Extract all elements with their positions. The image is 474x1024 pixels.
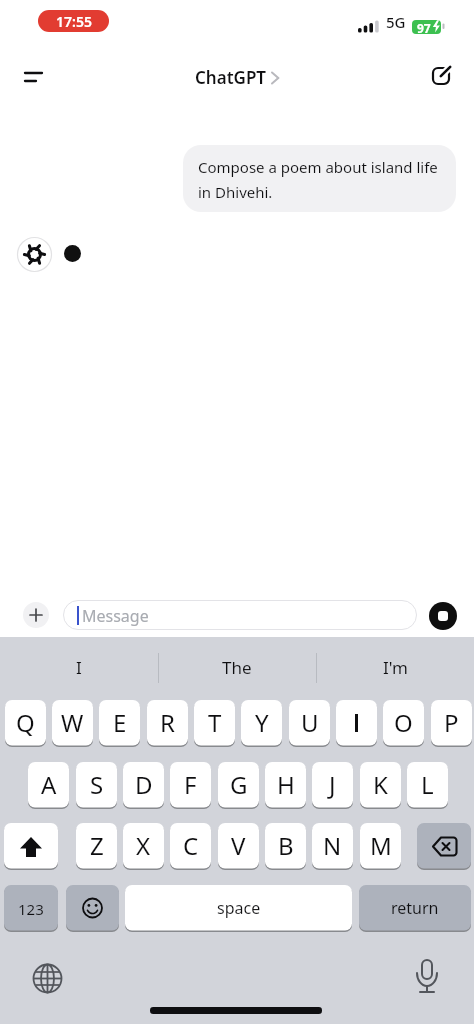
button[interactable] bbox=[4, 823, 58, 870]
button[interactable] bbox=[417, 823, 471, 870]
button[interactable] bbox=[31, 962, 64, 995]
button[interactable] bbox=[17, 64, 51, 90]
button[interactable]: H bbox=[265, 762, 306, 809]
staticText: U bbox=[301, 706, 319, 739]
staticText: Y bbox=[255, 706, 269, 739]
button[interactable]: Message bbox=[63, 600, 417, 630]
button[interactable] bbox=[23, 602, 49, 628]
button[interactable]: N bbox=[312, 823, 353, 870]
button[interactable] bbox=[413, 957, 441, 999]
staticText: I'm bbox=[383, 656, 408, 679]
button[interactable]: Q bbox=[5, 700, 46, 747]
staticText: C bbox=[183, 829, 199, 862]
button[interactable]: K bbox=[360, 762, 401, 809]
button[interactable]: Y bbox=[241, 700, 282, 747]
staticText: W bbox=[61, 706, 84, 739]
staticText: Q bbox=[16, 706, 35, 739]
button[interactable]: The bbox=[158, 648, 316, 686]
staticText: Message bbox=[82, 605, 149, 627]
staticText: R bbox=[160, 706, 175, 739]
staticText: T bbox=[208, 706, 222, 739]
staticText: G bbox=[230, 768, 248, 801]
staticText: The bbox=[222, 656, 252, 679]
staticText: in Dhivehi. bbox=[198, 182, 273, 202]
button[interactable]: G bbox=[218, 762, 259, 809]
staticText: M bbox=[370, 829, 392, 862]
button[interactable]: I'm bbox=[316, 648, 474, 686]
staticText: 97 bbox=[417, 20, 431, 34]
staticText: E bbox=[113, 706, 127, 739]
button[interactable]: M bbox=[360, 823, 401, 870]
button[interactable] bbox=[336, 700, 377, 747]
button[interactable] bbox=[66, 885, 119, 932]
button[interactable]: S bbox=[76, 762, 117, 809]
staticText: return bbox=[391, 897, 439, 919]
staticText: L bbox=[421, 768, 434, 801]
button[interactable]: Z bbox=[76, 823, 117, 870]
button[interactable]: P bbox=[431, 700, 472, 747]
staticText: K bbox=[373, 768, 388, 801]
staticText: F bbox=[184, 768, 197, 801]
button[interactable]: U bbox=[289, 700, 330, 747]
button[interactable]: J bbox=[312, 762, 353, 809]
staticText: Z bbox=[90, 829, 104, 862]
staticText: S bbox=[90, 768, 104, 801]
button[interactable]: L bbox=[407, 762, 448, 809]
staticText: 5G bbox=[386, 12, 406, 32]
button[interactable] bbox=[428, 61, 456, 89]
staticText: V bbox=[231, 829, 246, 862]
staticText: I bbox=[76, 656, 82, 679]
button[interactable]: T bbox=[194, 700, 235, 747]
button[interactable]: return bbox=[359, 885, 471, 932]
button[interactable]: space bbox=[125, 885, 352, 932]
staticText: D bbox=[135, 768, 153, 801]
staticText: B bbox=[278, 829, 294, 862]
button[interactable]: ChatGPT bbox=[195, 66, 267, 89]
button[interactable]: V bbox=[218, 823, 259, 870]
button[interactable]: R bbox=[147, 700, 188, 747]
button[interactable]: F bbox=[170, 762, 211, 809]
staticText: X bbox=[136, 829, 151, 862]
button[interactable]: D bbox=[123, 762, 164, 809]
button[interactable]: A bbox=[28, 762, 69, 809]
staticText: N bbox=[323, 829, 342, 862]
staticText: P bbox=[444, 706, 459, 739]
button[interactable]: 123 bbox=[4, 885, 58, 932]
staticText: space bbox=[217, 897, 261, 919]
button[interactable]: X bbox=[123, 823, 164, 870]
staticText: 123 bbox=[18, 899, 44, 919]
button[interactable]: W bbox=[52, 700, 93, 747]
staticText: Compose a poem about island life bbox=[198, 157, 438, 177]
staticText: A bbox=[41, 768, 57, 801]
button[interactable]: O bbox=[383, 700, 424, 747]
staticText: H bbox=[277, 768, 295, 801]
button[interactable] bbox=[429, 602, 457, 630]
staticText: ChatGPT bbox=[195, 66, 267, 89]
button[interactable]: I bbox=[0, 648, 158, 686]
staticText: O bbox=[394, 706, 413, 739]
staticText: J bbox=[329, 768, 336, 801]
button[interactable]: B bbox=[265, 823, 306, 870]
button[interactable]: C bbox=[170, 823, 211, 870]
button[interactable]: 17:55 bbox=[38, 10, 109, 32]
staticText: 17:55 bbox=[56, 12, 92, 31]
button[interactable]: E bbox=[99, 700, 140, 747]
